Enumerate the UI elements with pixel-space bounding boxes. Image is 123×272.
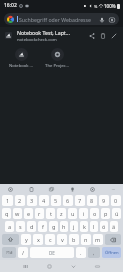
staticText: 16:02 bbox=[4, 2, 17, 9]
button[interactable]: f bbox=[38, 221, 47, 232]
button[interactable]: q bbox=[2, 208, 11, 219]
staticText: y bbox=[25, 236, 28, 243]
button[interactable]: Suchbegriff oder Webadresse bbox=[4, 13, 119, 25]
button[interactable]: Translate bbox=[67, 184, 77, 194]
button[interactable]: h bbox=[60, 221, 68, 232]
button[interactable]: . bbox=[76, 247, 86, 258]
staticText: o bbox=[93, 210, 97, 217]
button[interactable]: ?1# bbox=[2, 247, 16, 258]
staticText: 4 bbox=[42, 197, 46, 204]
button[interactable]: b bbox=[69, 234, 79, 245]
button[interactable]: w bbox=[13, 208, 22, 219]
button[interactable]: g bbox=[49, 221, 58, 232]
button[interactable]: d bbox=[27, 221, 36, 232]
button[interactable]: 9 bbox=[99, 195, 109, 206]
button[interactable]: u bbox=[68, 208, 77, 219]
button[interactable]: , bbox=[88, 247, 100, 258]
button[interactable]: Edit bbox=[108, 30, 119, 41]
button[interactable]: 6 bbox=[63, 195, 73, 206]
staticText: q bbox=[5, 210, 9, 217]
button[interactable]: Emoji / Settings bbox=[5, 184, 15, 194]
button[interactable]: Voice search bbox=[97, 15, 106, 24]
button[interactable]: 8 bbox=[87, 195, 97, 206]
button[interactable]: / bbox=[18, 247, 28, 258]
button[interactable]: Switch keyboard bbox=[85, 260, 109, 272]
staticText: Öffnen bbox=[105, 250, 119, 256]
button[interactable]: r bbox=[35, 208, 44, 219]
button[interactable]: 4 bbox=[39, 195, 49, 206]
button[interactable]: p bbox=[101, 208, 110, 219]
button[interactable]: j bbox=[70, 221, 78, 232]
staticText: c bbox=[49, 236, 52, 243]
button[interactable]: Notebook Test, Lapt... bbox=[0, 27, 123, 44]
button[interactable]: e bbox=[24, 208, 33, 219]
button[interactable]: l bbox=[90, 221, 98, 232]
staticText: 100% bbox=[104, 3, 116, 9]
button[interactable]: Notebook ... bbox=[6, 47, 36, 70]
staticText: w bbox=[15, 210, 20, 217]
button[interactable]: Google Lens bbox=[107, 15, 116, 24]
button[interactable]: Hide keyboard bbox=[61, 260, 85, 272]
button[interactable]: Öffnen bbox=[102, 247, 121, 258]
button[interactable]: 5 bbox=[51, 195, 61, 206]
button[interactable]: t bbox=[46, 208, 55, 219]
staticText: m bbox=[95, 236, 101, 243]
staticText: notebookcheck.com bbox=[17, 37, 57, 43]
staticText: 1 bbox=[6, 197, 10, 204]
button[interactable]: n bbox=[81, 234, 91, 245]
staticText: r bbox=[38, 210, 41, 217]
staticText: h bbox=[62, 223, 66, 230]
staticText: x bbox=[37, 236, 40, 243]
staticText: 5 bbox=[54, 197, 58, 204]
staticText: n bbox=[84, 236, 88, 243]
staticText: l bbox=[93, 223, 95, 230]
button[interactable]: Home bbox=[37, 260, 61, 272]
button[interactable]: Backspace bbox=[105, 234, 121, 245]
button[interactable]: Shift bbox=[2, 234, 19, 245]
staticText: d bbox=[30, 223, 34, 230]
button[interactable]: c bbox=[45, 234, 55, 245]
button[interactable]: More options bbox=[108, 184, 118, 194]
button[interactable]: Recents bbox=[13, 260, 37, 272]
button[interactable]: 0 bbox=[111, 195, 121, 206]
button[interactable]: Share bbox=[86, 30, 97, 41]
staticText: a bbox=[8, 223, 12, 230]
button[interactable]: i bbox=[79, 208, 88, 219]
staticText: i bbox=[83, 210, 85, 217]
staticText: DE bbox=[49, 250, 55, 256]
staticText: 8 bbox=[90, 197, 94, 204]
button[interactable]: ö bbox=[100, 221, 108, 232]
button[interactable]: 3 bbox=[27, 195, 37, 206]
staticText: v bbox=[61, 236, 64, 243]
button[interactable]: Clipboard bbox=[26, 184, 36, 194]
button[interactable]: ü bbox=[112, 208, 121, 219]
staticText: ä bbox=[112, 223, 116, 230]
staticText: Suchbegriff oder Webadresse bbox=[19, 16, 95, 23]
button[interactable]: Copy bbox=[97, 30, 108, 41]
button[interactable]: x bbox=[33, 234, 43, 245]
button[interactable]: v bbox=[57, 234, 67, 245]
button[interactable]: DE bbox=[30, 247, 74, 258]
staticText: , bbox=[93, 250, 95, 256]
button[interactable]: s bbox=[16, 221, 25, 232]
button[interactable]: Settings bbox=[87, 184, 97, 194]
button[interactable]: z bbox=[57, 208, 66, 219]
button[interactable]: ä bbox=[110, 221, 118, 232]
staticText: z bbox=[60, 210, 63, 217]
button[interactable]: 2 bbox=[15, 195, 25, 206]
button[interactable]: m bbox=[93, 234, 103, 245]
staticText: . bbox=[80, 249, 82, 256]
button[interactable]: The Projec... bbox=[42, 47, 72, 70]
staticText: g bbox=[52, 223, 56, 230]
button[interactable]: Sticker bbox=[46, 184, 56, 194]
button[interactable]: 7 bbox=[75, 195, 85, 206]
button[interactable]: k bbox=[80, 221, 88, 232]
button[interactable]: y bbox=[21, 234, 31, 245]
button[interactable]: o bbox=[90, 208, 99, 219]
staticText: 0 bbox=[114, 197, 118, 204]
button[interactable]: 1 bbox=[2, 195, 13, 206]
staticText: b bbox=[72, 236, 76, 243]
staticText: / bbox=[22, 249, 25, 256]
staticText: 9 bbox=[102, 197, 106, 204]
button[interactable]: a bbox=[5, 221, 14, 232]
